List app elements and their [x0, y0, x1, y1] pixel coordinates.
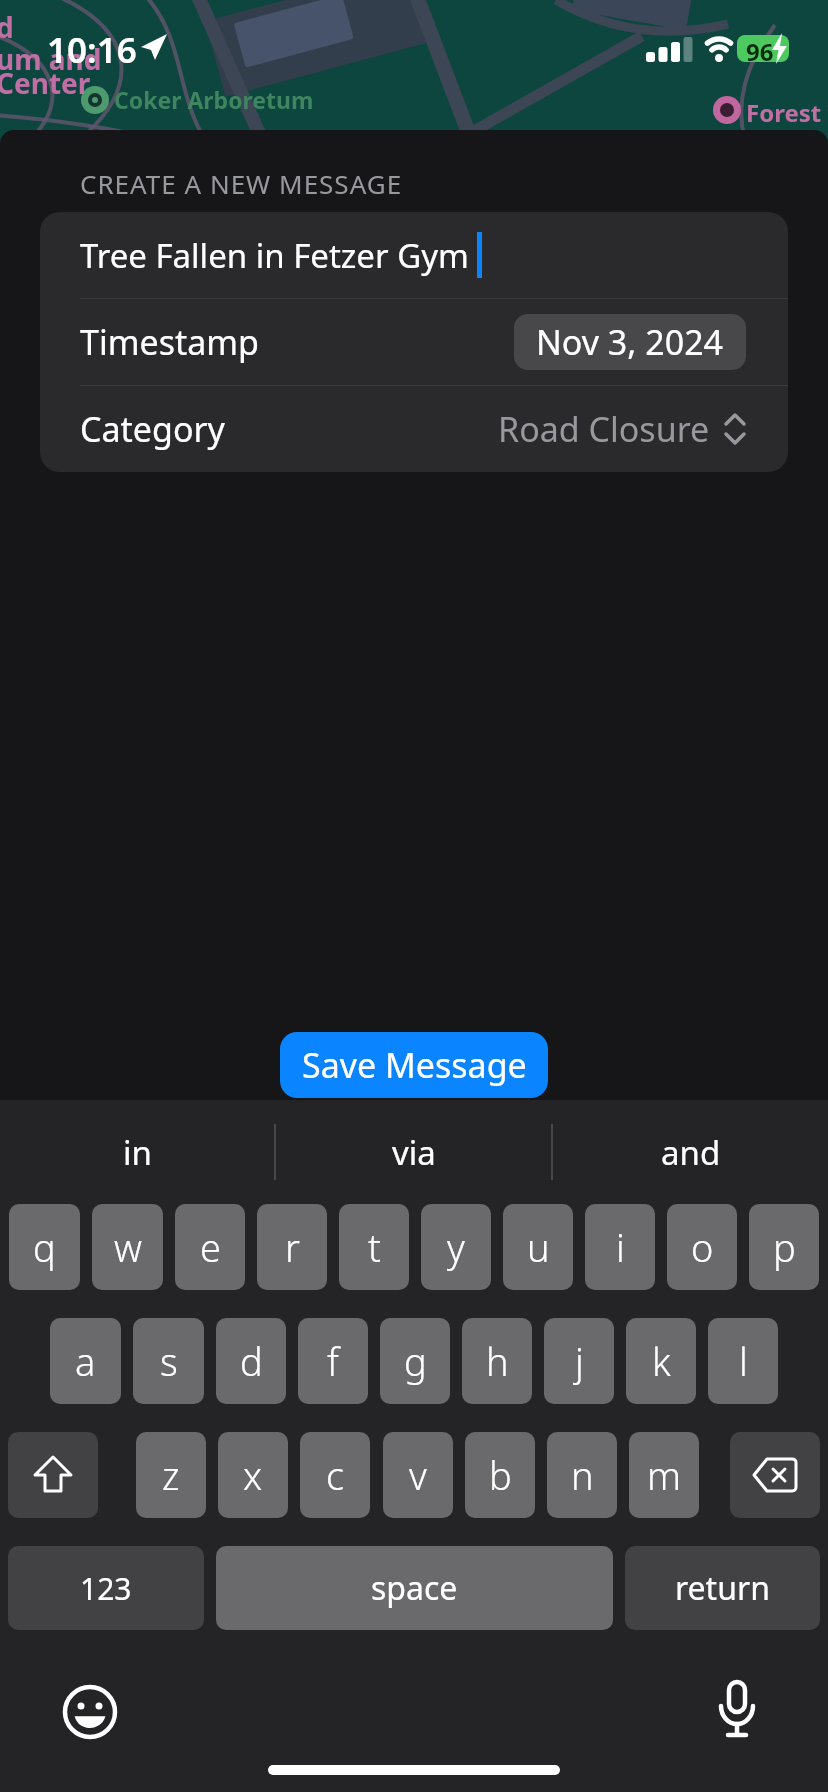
- staticText: 96: [746, 35, 774, 62]
- button[interactable]: n: [547, 1432, 617, 1518]
- button[interactable]: z: [136, 1432, 206, 1518]
- button[interactable]: b: [465, 1432, 535, 1518]
- staticText: um and: [0, 40, 102, 78]
- staticText: a: [75, 1335, 96, 1387]
- button[interactable]: Save Message: [280, 1032, 548, 1098]
- staticText: in: [123, 1130, 152, 1175]
- button[interactable]: r: [257, 1204, 327, 1290]
- button[interactable]: and: [553, 1100, 828, 1204]
- button[interactable]: e: [175, 1204, 245, 1290]
- staticText: e: [200, 1221, 221, 1273]
- staticText: p: [773, 1221, 796, 1273]
- button[interactable]: k: [626, 1318, 696, 1404]
- staticText: Tree Fallen in Fetzer Gym: [80, 233, 469, 278]
- staticText: s: [160, 1335, 178, 1387]
- button[interactable]: Category: [40, 386, 788, 472]
- staticText: Timestamp: [80, 319, 259, 365]
- button[interactable]: v: [383, 1432, 453, 1518]
- button[interactable]: 123: [8, 1546, 204, 1630]
- button[interactable]: y: [421, 1204, 491, 1290]
- staticText: d: [0, 8, 14, 46]
- button[interactable]: p: [749, 1204, 819, 1290]
- button[interactable]: [8, 1432, 98, 1518]
- staticText: and: [661, 1130, 721, 1175]
- staticText: y: [447, 1221, 465, 1273]
- button[interactable]: via: [276, 1100, 551, 1204]
- button[interactable]: u: [503, 1204, 573, 1290]
- button[interactable]: Nov 3, 2024: [514, 314, 746, 370]
- button[interactable]: [62, 1684, 118, 1740]
- staticText: z: [162, 1449, 180, 1501]
- staticText: Center: [0, 64, 91, 102]
- staticText: j: [575, 1335, 584, 1387]
- button[interactable]: o: [667, 1204, 737, 1290]
- staticText: n: [571, 1449, 594, 1501]
- staticText: m: [647, 1449, 681, 1501]
- button[interactable]: f: [298, 1318, 368, 1404]
- staticText: k: [652, 1335, 671, 1387]
- staticText: b: [489, 1449, 512, 1501]
- staticText: g: [404, 1335, 427, 1387]
- button[interactable]: j: [544, 1318, 614, 1404]
- staticText: Nov 3, 2024: [536, 319, 724, 365]
- staticText: 123: [80, 1568, 132, 1609]
- staticText: h: [486, 1335, 509, 1387]
- staticText: 10:16: [47, 26, 137, 74]
- staticText: via: [392, 1130, 436, 1175]
- button[interactable]: [712, 1680, 762, 1742]
- staticText: u: [527, 1221, 550, 1273]
- staticText: space: [371, 1566, 458, 1610]
- button[interactable]: Timestamp: [40, 299, 788, 385]
- staticText: Category: [80, 406, 225, 452]
- button[interactable]: t: [339, 1204, 409, 1290]
- button[interactable]: c: [300, 1432, 370, 1518]
- button[interactable]: return: [625, 1546, 820, 1630]
- staticText: f: [327, 1335, 339, 1387]
- staticText: w: [114, 1221, 142, 1273]
- staticText: l: [739, 1335, 748, 1387]
- staticText: v: [409, 1449, 427, 1501]
- button[interactable]: w: [92, 1204, 163, 1290]
- staticText: q: [33, 1221, 56, 1273]
- staticText: CREATE A NEW MESSAGE: [80, 166, 403, 201]
- button[interactable]: space: [216, 1546, 613, 1630]
- staticText: return: [675, 1566, 770, 1610]
- button[interactable]: h: [462, 1318, 532, 1404]
- staticText: r: [285, 1221, 300, 1273]
- button[interactable]: d: [216, 1318, 286, 1404]
- button[interactable]: l: [708, 1318, 778, 1404]
- staticText: Coker Arboretum: [114, 84, 314, 115]
- button[interactable]: q: [9, 1204, 80, 1290]
- staticText: Road Closure: [498, 406, 710, 452]
- staticText: c: [326, 1449, 345, 1501]
- staticText: Save Message: [302, 1042, 527, 1088]
- staticText: Forest T: [746, 96, 828, 129]
- staticText: x: [243, 1449, 263, 1501]
- staticText: t: [368, 1221, 381, 1273]
- staticText: d: [240, 1335, 263, 1387]
- button[interactable]: i: [585, 1204, 655, 1290]
- button[interactable]: Tree Fallen in Fetzer Gym: [40, 212, 788, 298]
- staticText: i: [616, 1221, 625, 1273]
- button[interactable]: a: [50, 1318, 121, 1404]
- button[interactable]: in: [0, 1100, 274, 1204]
- button[interactable]: s: [133, 1318, 204, 1404]
- button[interactable]: [730, 1432, 820, 1518]
- button[interactable]: m: [629, 1432, 699, 1518]
- button[interactable]: g: [380, 1318, 450, 1404]
- button[interactable]: x: [218, 1432, 288, 1518]
- staticText: o: [691, 1221, 714, 1273]
